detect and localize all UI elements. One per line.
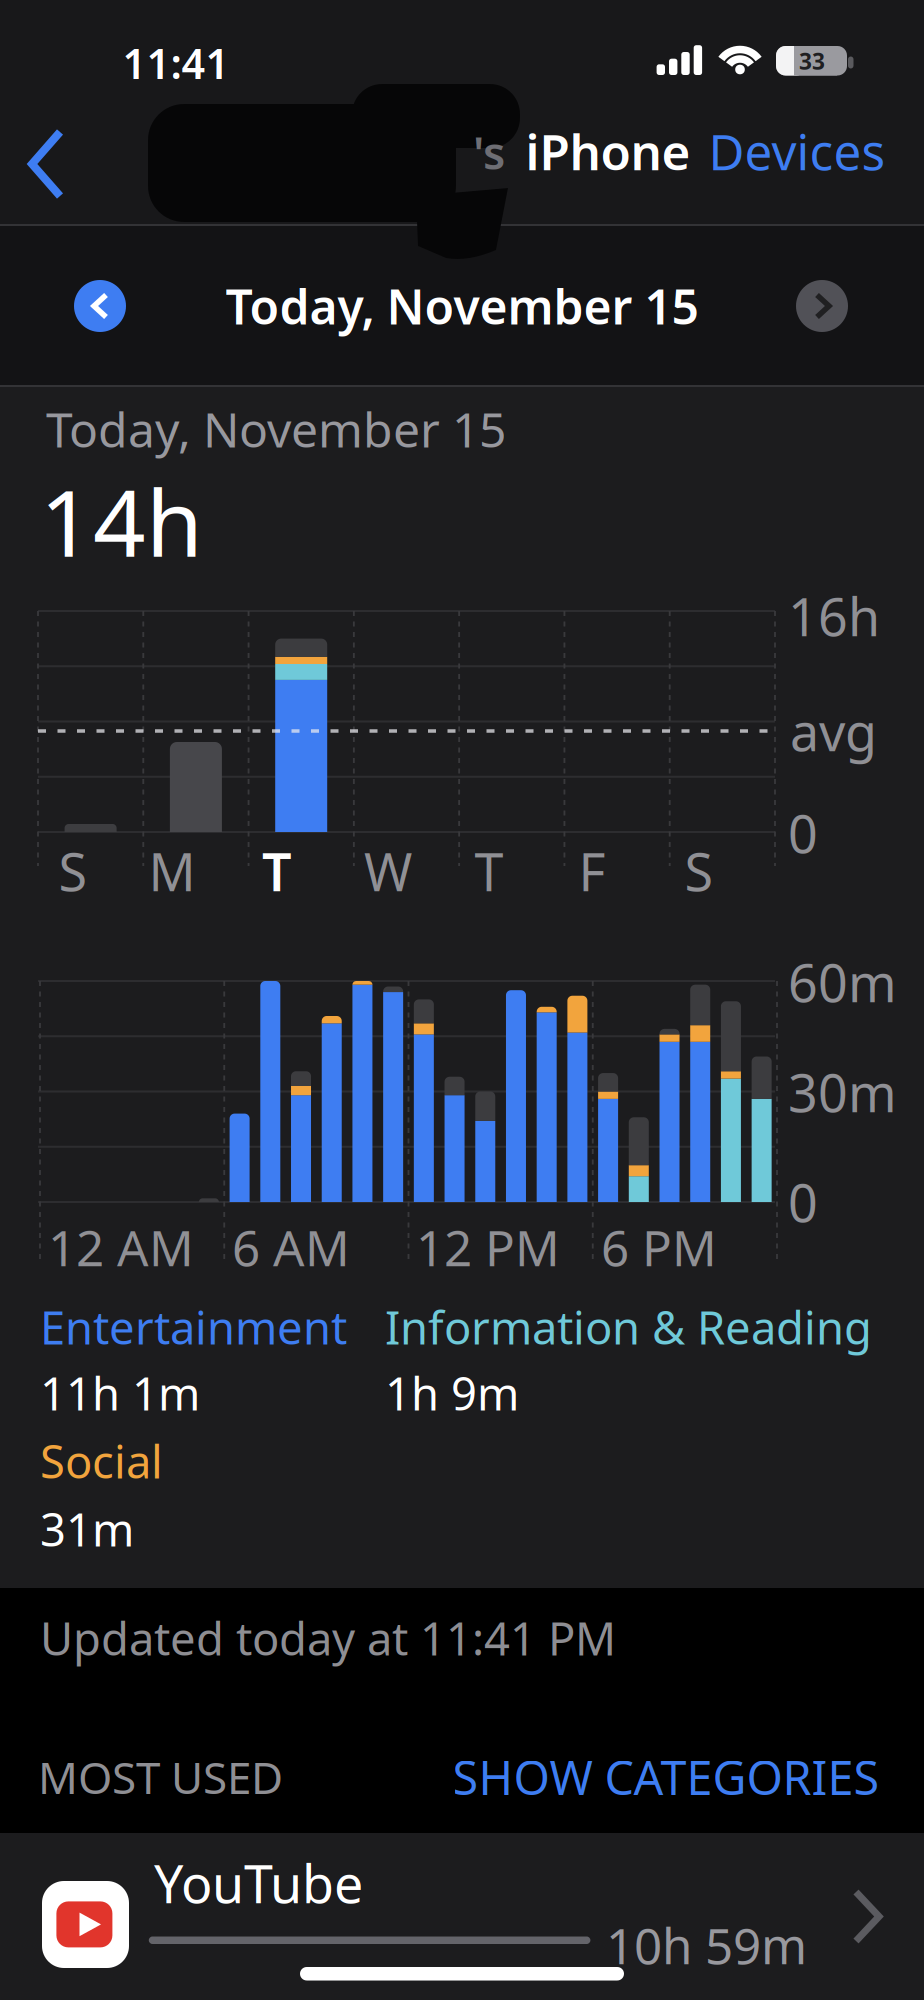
staticText: 0 (788, 798, 818, 868)
button[interactable]: Next day (796, 280, 848, 332)
staticText: F (578, 836, 605, 906)
staticText: 1h 9m (385, 1363, 519, 1423)
staticText: W (364, 836, 412, 906)
staticText: S (58, 836, 87, 906)
staticText: MOST USED (38, 1748, 283, 1806)
staticText: Today, November 15 (46, 397, 506, 461)
staticText: 11:41 (122, 36, 229, 90)
staticText: 14h (40, 460, 203, 582)
staticText: Today, November 15 (225, 274, 698, 338)
staticText: Entertainment (40, 1297, 347, 1357)
button[interactable]: Back (16, 124, 76, 204)
staticText: Social (40, 1431, 163, 1491)
staticText: 60m (788, 947, 897, 1017)
staticText: Updated today at 11:41 PM (40, 1608, 616, 1668)
staticText: SHOW CATEGORIES (452, 1746, 879, 1808)
staticText: M (148, 836, 195, 906)
button[interactable]: Devices (708, 118, 885, 184)
button[interactable]: Previous day (74, 280, 126, 332)
staticText: 11h 1m (40, 1363, 200, 1423)
staticText: Information & Reading (385, 1297, 872, 1357)
staticText: 31m (40, 1499, 134, 1559)
staticText: 12 AM (48, 1214, 194, 1280)
staticText: YouTube (154, 1848, 363, 1918)
button[interactable]: SHOW CATEGORIES (452, 1746, 879, 1808)
staticText: 10h 59m (606, 1912, 807, 1978)
staticText: T (474, 836, 503, 906)
staticText: 6 AM (232, 1214, 350, 1280)
staticText: 30m (788, 1057, 897, 1127)
staticText: 33 (799, 46, 825, 76)
staticText: 6 PM (601, 1214, 717, 1280)
button[interactable]: YouTube (0, 1833, 924, 2000)
staticText: 's (473, 122, 505, 182)
staticText: S (684, 836, 713, 906)
staticText: 12 PM (416, 1214, 560, 1280)
staticText: T (262, 836, 292, 906)
staticText: iPhone (525, 118, 690, 184)
staticText: Devices (708, 118, 885, 184)
staticText: avg (790, 696, 877, 766)
staticText: 16h (788, 581, 880, 651)
staticText: 0 (788, 1167, 818, 1237)
